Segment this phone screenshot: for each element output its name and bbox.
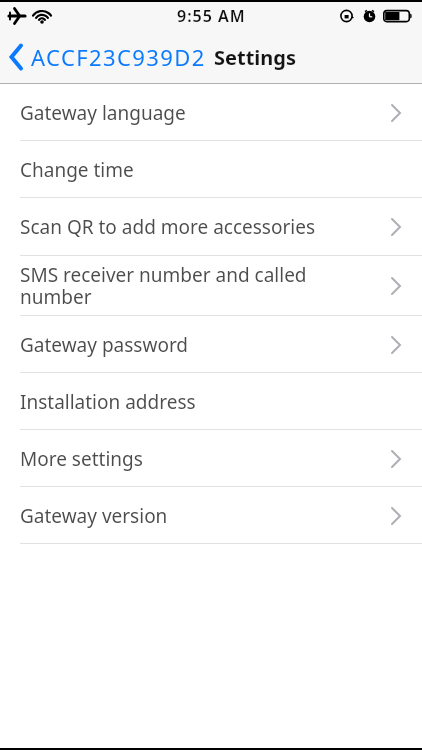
staticText: Settings [214, 44, 296, 71]
staticText: Gateway password [20, 332, 189, 358]
staticText: More settings [20, 446, 143, 472]
staticText: Gateway version [20, 503, 168, 529]
staticText: Scan QR to add more accessories [20, 214, 316, 240]
staticText: ACCF23C939D2 [31, 42, 206, 72]
button[interactable]: SMS receiver number and called number [0, 256, 422, 316]
button[interactable]: Change time [0, 141, 422, 198]
staticText: Gateway language [20, 100, 186, 126]
button[interactable]: ACCF23C939D2 [9, 42, 206, 72]
staticText: 9:55 AM [177, 5, 246, 27]
button[interactable]: Gateway language [0, 84, 422, 141]
button[interactable]: Gateway password [0, 316, 422, 373]
staticText: SMS receiver number and called number [20, 262, 307, 310]
button[interactable]: Gateway version [0, 487, 422, 544]
button[interactable]: Scan QR to add more accessories [0, 198, 422, 256]
staticText: Change time [20, 157, 134, 183]
button[interactable]: More settings [0, 430, 422, 487]
button[interactable]: Installation address [0, 373, 422, 430]
staticText: Installation address [20, 389, 196, 415]
